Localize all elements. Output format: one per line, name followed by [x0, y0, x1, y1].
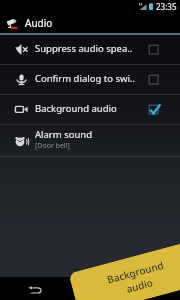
staticText: 23:35 [156, 1, 177, 12]
staticText: Audio [25, 16, 53, 30]
button[interactable]: Toggle option [145, 70, 163, 88]
staticText: [Door bell] [35, 141, 70, 151]
staticText: Confirm dialog to swi.. [35, 72, 135, 85]
staticText: Background [105, 258, 165, 286]
staticText: Background audio [35, 102, 117, 115]
button[interactable]: Toggle option [145, 100, 163, 118]
button[interactable]: Back [25, 280, 45, 300]
button[interactable]: Suppress audio spea.. [0, 35, 180, 64]
button[interactable]: Background [68, 240, 180, 300]
button[interactable]: Toggle option [145, 40, 163, 58]
button[interactable]: Background audio [0, 95, 180, 124]
button[interactable]: Confirm dialog to swi.. [0, 65, 180, 94]
button[interactable]: Alarm sound [0, 125, 180, 156]
staticText: audio [125, 275, 154, 296]
staticText: Suppress audio spea.. [35, 42, 133, 55]
staticText: Alarm sound [35, 128, 93, 141]
button[interactable]: Navigate up [5, 16, 19, 30]
